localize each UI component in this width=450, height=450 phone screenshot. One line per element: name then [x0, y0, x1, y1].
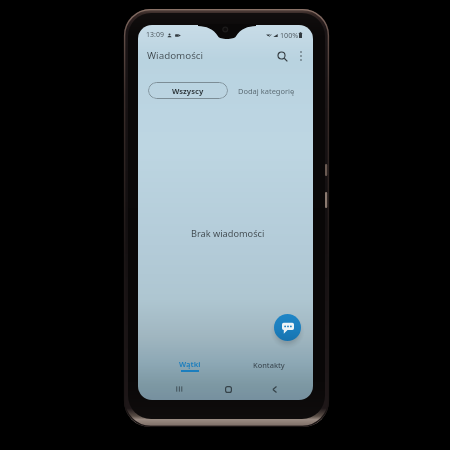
staticText: 13:09 [146, 30, 164, 40]
staticText: Wątki [179, 359, 201, 369]
staticText: Dodaj kategorię [238, 86, 295, 96]
button[interactable]: Recents [170, 380, 188, 398]
button[interactable]: Search [274, 48, 290, 64]
button[interactable]: More options [293, 48, 309, 64]
button[interactable]: Kontakty [241, 359, 297, 371]
staticText: Kontakty [253, 360, 285, 370]
button[interactable]: Home [219, 380, 237, 398]
staticText: Wszyscy [172, 86, 204, 96]
staticText: 100% [280, 30, 299, 40]
button[interactable]: Dodaj kategorię [238, 82, 295, 99]
staticText: Wiadomości [147, 49, 204, 62]
staticText: Brak wiadomości [191, 227, 265, 240]
button[interactable]: New conversation [274, 314, 301, 341]
button[interactable]: Wszyscy [148, 82, 228, 99]
button[interactable]: Wątki [167, 359, 212, 372]
button[interactable]: Back [265, 380, 283, 398]
